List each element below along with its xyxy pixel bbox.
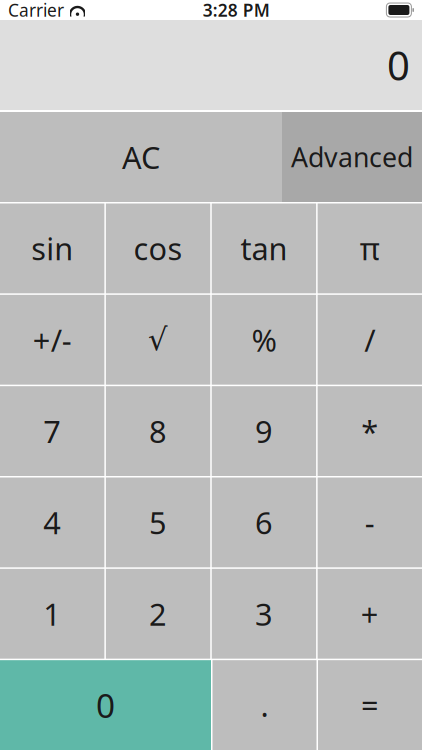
button[interactable]: 3 (212, 569, 316, 659)
button[interactable]: . (212, 660, 316, 750)
button[interactable]: = (318, 660, 422, 750)
staticText: 7 (43, 411, 61, 451)
button[interactable]: 4 (0, 477, 104, 567)
staticText: 1 (43, 593, 61, 634)
button[interactable]: 1 (0, 569, 104, 659)
staticText: sin (31, 228, 73, 269)
button[interactable]: π (318, 203, 422, 293)
staticText: 3:28 PM (203, 0, 270, 21)
button[interactable]: % (212, 295, 316, 385)
staticText: . (260, 685, 268, 725)
staticText: π (360, 228, 380, 269)
staticText: 8 (149, 411, 167, 451)
staticText: / (364, 319, 375, 360)
staticText: 3 (255, 593, 273, 634)
staticText: Advanced (291, 139, 413, 175)
staticText: 0 (96, 683, 115, 727)
button[interactable]: cos (106, 203, 210, 293)
button[interactable]: AC (0, 112, 282, 202)
staticText: 2 (149, 593, 167, 634)
staticText: +/- (33, 319, 72, 360)
button[interactable]: +/- (0, 295, 104, 385)
staticText: 9 (255, 411, 273, 451)
staticText: Carrier (8, 0, 64, 21)
button[interactable]: sin (0, 203, 104, 293)
button[interactable]: 7 (0, 386, 104, 476)
staticText: 4 (43, 502, 61, 543)
button[interactable]: 5 (106, 477, 210, 567)
button[interactable]: - (318, 477, 422, 567)
staticText: = (361, 685, 379, 725)
staticText: 6 (255, 502, 273, 543)
button[interactable]: 9 (212, 386, 316, 476)
button[interactable]: / (318, 295, 422, 385)
staticText: √ (148, 322, 168, 357)
button[interactable]: + (318, 569, 422, 659)
staticText: AC (122, 137, 160, 177)
button[interactable]: tan (212, 203, 316, 293)
button[interactable]: 6 (212, 477, 316, 567)
staticText: cos (134, 228, 183, 269)
button[interactable]: √ (106, 295, 210, 385)
button[interactable]: 2 (106, 569, 210, 659)
staticText: % (251, 319, 276, 360)
staticText: tan (240, 228, 287, 269)
button[interactable]: * (318, 386, 422, 476)
staticText: + (361, 593, 379, 634)
staticText: * (361, 411, 378, 451)
button[interactable]: 0 (0, 660, 211, 750)
button[interactable]: Advanced (282, 112, 422, 202)
button[interactable]: 8 (106, 386, 210, 476)
staticText: 0 (387, 38, 410, 91)
staticText: 5 (149, 502, 167, 543)
staticText: - (365, 502, 375, 543)
